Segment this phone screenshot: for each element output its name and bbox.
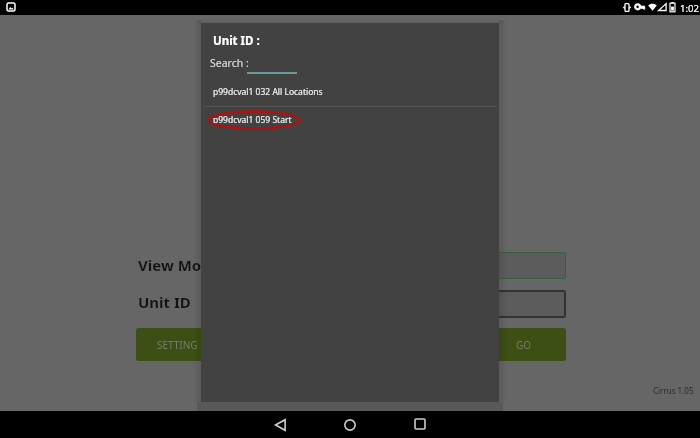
button[interactable]: GO bbox=[481, 328, 566, 361]
staticText: Unit ID : bbox=[213, 33, 260, 49]
staticText: p99dcval1 032 All Locations bbox=[213, 86, 323, 98]
button[interactable]: p99dcval1 032 All Locations bbox=[201, 80, 499, 103]
staticText: Search : bbox=[210, 56, 249, 70]
button[interactable]: Home bbox=[338, 413, 362, 437]
staticText: SETTING bbox=[157, 338, 198, 352]
staticText: Unit ID bbox=[138, 292, 191, 312]
button[interactable]: SETTING bbox=[136, 328, 218, 361]
button[interactable] bbox=[320, 252, 566, 279]
staticText: GO bbox=[516, 338, 532, 352]
button[interactable]: Recent apps bbox=[408, 412, 432, 436]
button[interactable]: Back bbox=[268, 413, 292, 437]
button[interactable]: Search field bbox=[245, 56, 299, 74]
staticText: View Mode bbox=[138, 255, 220, 275]
button[interactable] bbox=[320, 290, 566, 318]
staticText: 1:02 bbox=[680, 2, 699, 15]
staticText: p99dcval1 059 Start bbox=[213, 114, 292, 126]
staticText: Cirrus 1.05 bbox=[653, 385, 694, 396]
button[interactable]: p99dcval1 059 Start bbox=[201, 107, 499, 133]
